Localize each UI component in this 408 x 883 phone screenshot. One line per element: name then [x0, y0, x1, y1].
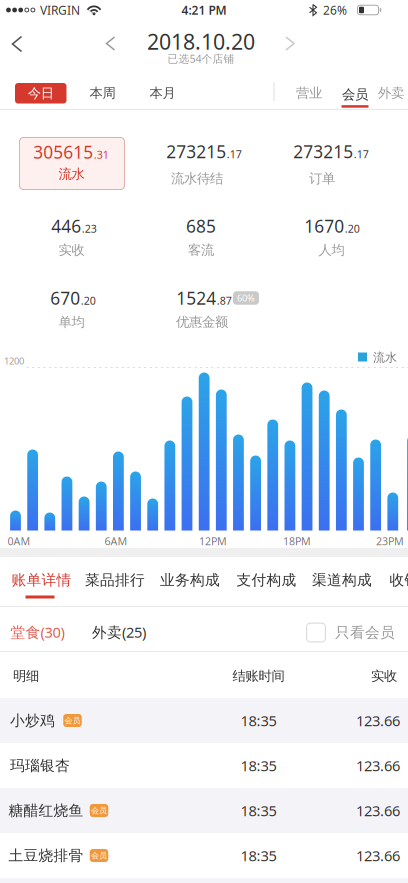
button[interactable]: 外卖(25) — [92, 616, 146, 648]
staticText: 只看会员 — [335, 623, 395, 641]
button[interactable]: 外卖 — [374, 81, 408, 105]
staticText: 土豆烧排骨 — [8, 846, 83, 864]
staticText: 18:35 — [240, 756, 276, 775]
staticText: 会员 — [91, 851, 107, 860]
staticText: 4:21 PM — [181, 2, 226, 18]
staticText: 玛瑙银杏 — [10, 756, 70, 774]
staticText: .87 — [217, 293, 232, 308]
staticText: 支付构成 — [236, 571, 296, 589]
staticText: 流水待结 — [171, 170, 223, 187]
staticText: 60% — [237, 292, 255, 304]
staticText: 12PM — [199, 534, 227, 548]
staticText: 685 — [186, 214, 216, 237]
staticText: 今日 — [28, 85, 54, 101]
button[interactable]: 菜品排行 — [85, 565, 145, 595]
button[interactable]: 支付构成 — [236, 565, 296, 595]
staticText: 渠道构成 — [312, 571, 372, 589]
button[interactable]: 小炒鸡 — [0, 698, 408, 743]
staticText: .17 — [354, 147, 369, 161]
staticText: 18:35 — [240, 846, 276, 865]
staticText: 123.66 — [356, 756, 400, 775]
staticText: 糖醋红烧鱼 — [8, 801, 83, 819]
staticText: 会员 — [91, 806, 107, 815]
staticText: 会员 — [342, 86, 368, 103]
staticText: 实收 — [58, 242, 84, 258]
staticText: 18:35 — [240, 711, 276, 730]
button[interactable]: 收银员 — [389, 565, 408, 595]
staticText: 0AM — [7, 534, 30, 548]
button[interactable]: 渠道构成 — [312, 565, 372, 595]
staticText: 123.66 — [356, 801, 400, 820]
button[interactable]: 账单详情 — [11, 565, 71, 595]
staticText: 明细 — [13, 668, 39, 684]
staticText: 外卖 — [378, 85, 404, 101]
staticText: 流水 — [373, 350, 397, 365]
staticText: .20 — [81, 293, 96, 308]
staticText: .20 — [345, 221, 360, 236]
staticText: 收银员 — [389, 571, 408, 589]
staticText: 人均 — [318, 242, 344, 258]
staticText: 小炒鸡 — [10, 711, 55, 729]
staticText: 订单 — [309, 170, 335, 187]
button[interactable]: 今日 — [15, 83, 66, 103]
staticText: 123.66 — [356, 711, 400, 730]
staticText: .17 — [227, 147, 242, 161]
button[interactable]: 只看会员 — [306, 622, 395, 642]
staticText: 23PM — [376, 534, 404, 548]
staticText: 1524 — [176, 286, 216, 309]
staticText: 账单详情 — [11, 571, 71, 589]
staticText: 流水 — [58, 166, 84, 182]
staticText: 1670 — [304, 214, 344, 237]
staticText: 会员 — [64, 716, 80, 725]
button[interactable]: 前一天 — [98, 29, 122, 58]
staticText: 18:35 — [240, 801, 276, 820]
staticText: 273215 — [166, 140, 226, 163]
button[interactable]: 业务构成 — [160, 565, 220, 595]
button[interactable]: 返回 — [2, 26, 31, 61]
button[interactable]: 土豆烧排骨 — [0, 833, 408, 878]
staticText: 本月 — [149, 85, 175, 101]
staticText: VIRGIN — [40, 2, 80, 18]
staticText: 18PM — [283, 534, 311, 548]
staticText: 670 — [50, 286, 80, 309]
staticText: 业务构成 — [160, 571, 220, 589]
staticText: 6AM — [104, 534, 127, 548]
button[interactable]: 本周 — [85, 81, 119, 105]
staticText: 营业 — [296, 85, 322, 101]
staticText: 123.66 — [356, 846, 400, 865]
staticText: .23 — [82, 221, 97, 236]
button[interactable]: 会员 — [341, 86, 368, 108]
staticText: 实收 — [371, 668, 397, 684]
staticText: 446 — [51, 214, 81, 237]
button[interactable]: 本月 — [145, 81, 179, 105]
button[interactable]: 营业 — [292, 81, 326, 105]
staticText: 单均 — [58, 314, 84, 330]
staticText: 客流 — [188, 242, 214, 258]
staticText: 结账时间 — [232, 668, 284, 684]
staticText: 2018.10.20 — [147, 27, 255, 56]
staticText: 优惠金额 — [176, 314, 228, 330]
staticText: 外卖(25) — [92, 622, 146, 642]
button[interactable]: 玛瑙银杏 — [0, 743, 408, 788]
staticText: 本周 — [89, 85, 115, 101]
button[interactable]: 糖醋红烧鱼 — [0, 788, 408, 833]
staticText: 已选54个店铺 — [167, 51, 234, 66]
staticText: 273215 — [293, 140, 353, 163]
button[interactable]: 堂食(30) — [10, 616, 64, 648]
staticText: 菜品排行 — [85, 571, 145, 589]
staticText: 堂食(30) — [10, 622, 64, 642]
button[interactable]: 后一天 — [278, 29, 302, 58]
staticText: 26% — [323, 2, 347, 18]
staticText: 305615 — [33, 140, 93, 163]
staticText: 1200 — [4, 355, 24, 367]
staticText: .31 — [94, 147, 109, 162]
